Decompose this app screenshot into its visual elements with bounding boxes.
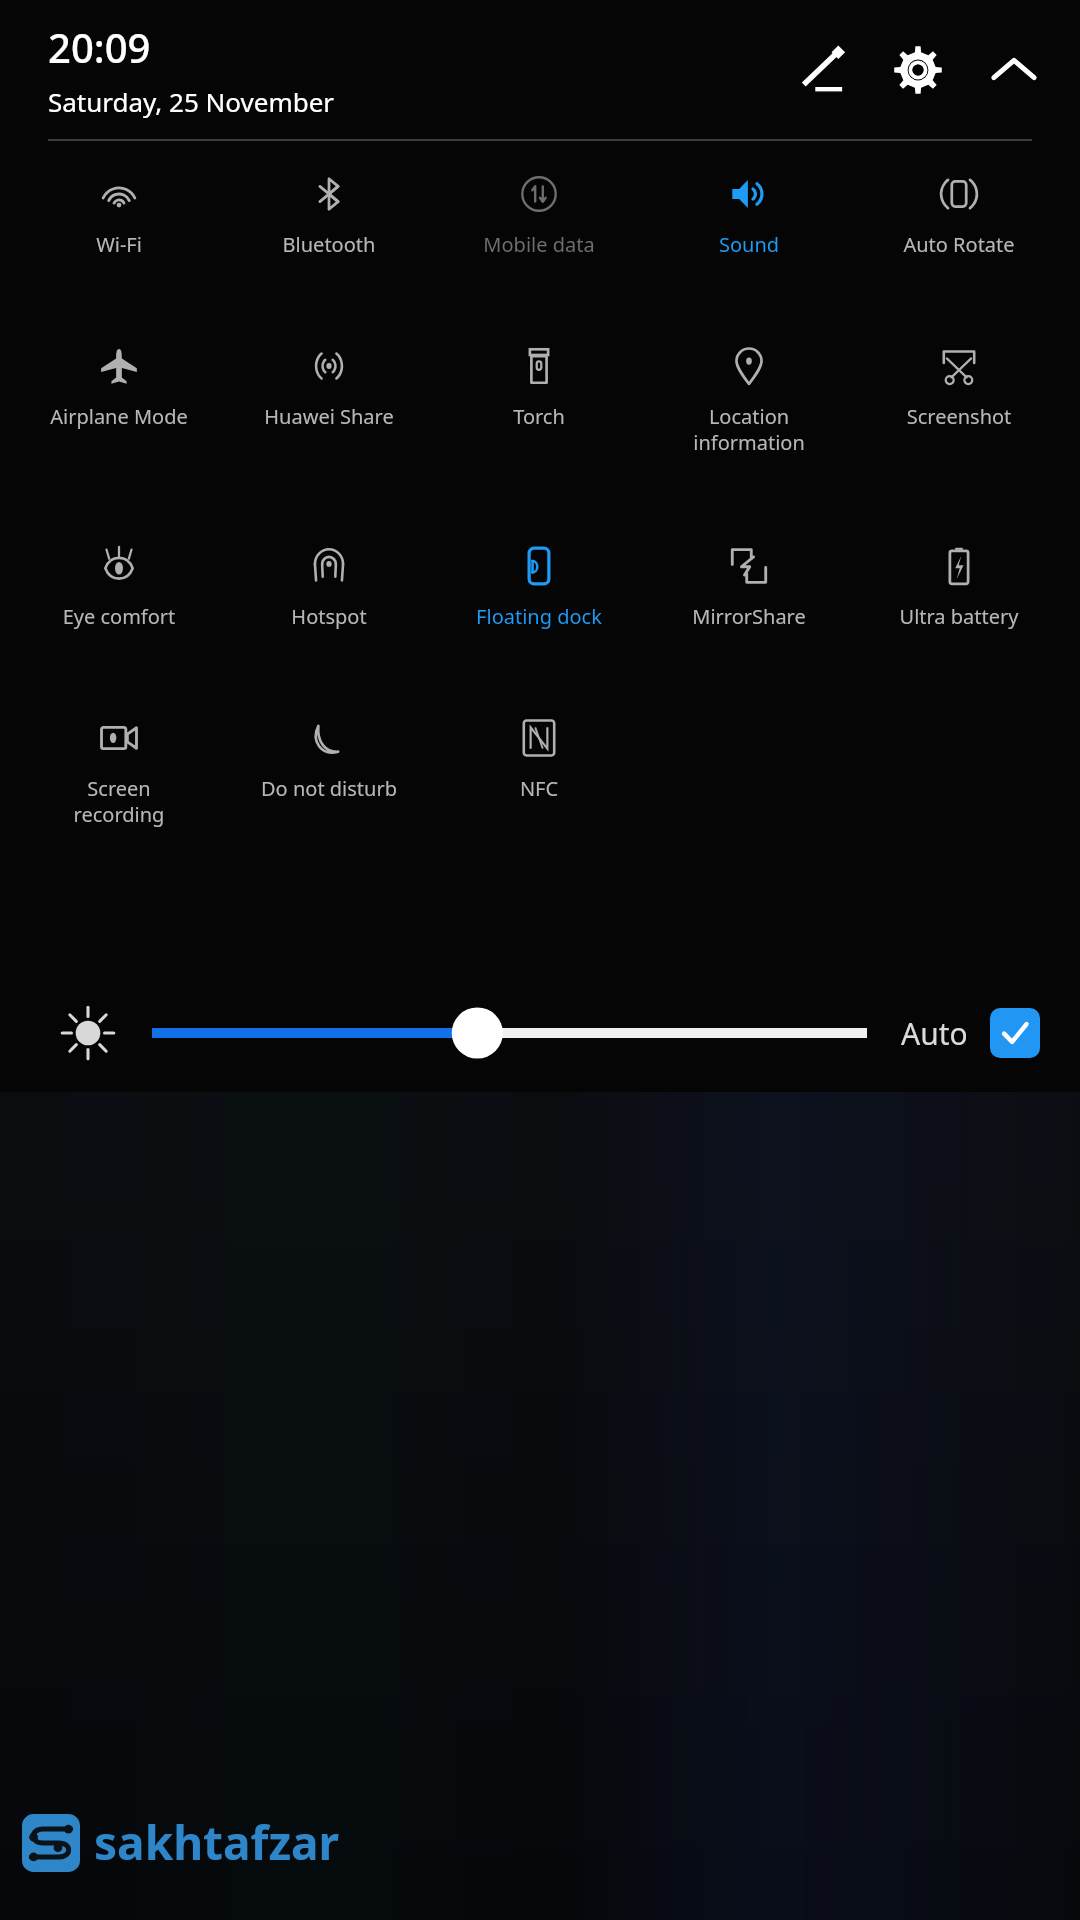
staticText: Hotspot bbox=[224, 603, 434, 630]
button[interactable]: Torch bbox=[434, 327, 644, 430]
staticText: Screenshot bbox=[854, 403, 1064, 430]
staticText: MirrorShare bbox=[644, 603, 854, 630]
staticText: 20:09 bbox=[48, 20, 151, 74]
staticText: Sound bbox=[644, 231, 854, 258]
button[interactable]: Auto bbox=[901, 1008, 1040, 1058]
staticText: Airplane Mode bbox=[14, 403, 224, 430]
button[interactable]: Screenshot bbox=[854, 327, 1064, 430]
button[interactable]: Mobile data bbox=[434, 155, 644, 258]
button[interactable]: Location information bbox=[644, 327, 854, 456]
staticText: Saturday, 25 November bbox=[48, 84, 335, 119]
button[interactable]: Wi-Fi bbox=[14, 155, 224, 258]
staticText: Location information bbox=[644, 403, 854, 456]
button[interactable]: Edit bbox=[774, 22, 870, 118]
staticText: Bluetooth bbox=[224, 231, 434, 258]
button[interactable]: MirrorShare bbox=[644, 527, 854, 630]
staticText: NFC bbox=[434, 775, 644, 802]
button[interactable]: Hotspot bbox=[224, 527, 434, 630]
staticText: Auto Rotate bbox=[854, 231, 1064, 258]
staticText: Do not disturb bbox=[224, 775, 434, 802]
staticText: Eye comfort bbox=[14, 603, 224, 630]
staticText: Huawei Share bbox=[224, 403, 434, 430]
button[interactable]: Ultra battery bbox=[854, 527, 1064, 630]
button[interactable]: Airplane Mode bbox=[14, 327, 224, 430]
button[interactable]: Floating dock bbox=[434, 527, 644, 630]
staticText: Ultra battery bbox=[854, 603, 1064, 630]
button[interactable]: Bluetooth bbox=[224, 155, 434, 258]
button[interactable]: Collapse bbox=[966, 22, 1062, 118]
button[interactable]: Auto Rotate bbox=[854, 155, 1064, 258]
button[interactable]: Screen recording bbox=[14, 699, 224, 828]
button[interactable]: Sound bbox=[644, 155, 854, 258]
button[interactable]: Huawei Share bbox=[224, 327, 434, 430]
button[interactable]: Brightness bbox=[52, 997, 124, 1069]
staticText: Wi-Fi bbox=[14, 231, 224, 258]
staticText: Mobile data bbox=[434, 231, 644, 258]
button[interactable]: Do not disturb bbox=[224, 699, 434, 802]
staticText: sakhtafzar bbox=[94, 1811, 340, 1874]
button[interactable] bbox=[152, 1001, 867, 1065]
staticText: Screen recording bbox=[14, 775, 224, 828]
button[interactable]: NFC bbox=[434, 699, 644, 802]
button[interactable]: Eye comfort bbox=[14, 527, 224, 630]
staticText: Torch bbox=[434, 403, 644, 430]
staticText: Auto bbox=[901, 1013, 968, 1054]
staticText: Floating dock bbox=[434, 603, 644, 630]
button[interactable]: Settings bbox=[870, 22, 966, 118]
